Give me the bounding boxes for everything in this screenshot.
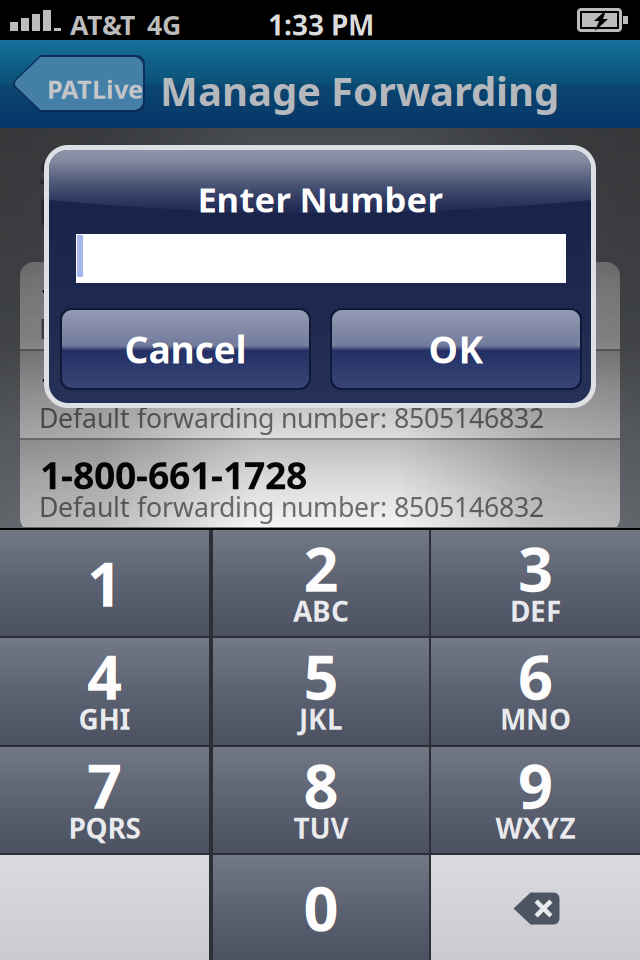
staticText: OK [428, 324, 483, 374]
staticText: 1 [87, 542, 122, 624]
staticText: 8 [303, 744, 338, 826]
button[interactable]: OK [330, 308, 582, 390]
staticText: 6 [518, 635, 553, 717]
button[interactable]: Blank [0, 855, 209, 960]
staticText: 0 [303, 867, 338, 948]
button[interactable]: 1-800-265-0895 [20, 262, 620, 349]
staticText: JKL [299, 700, 343, 738]
staticText: 1:33 PM [268, 6, 374, 43]
staticText: Select the inbound number you'd [39, 150, 592, 194]
staticText: 3 [518, 527, 553, 609]
button[interactable]: 4 [0, 638, 209, 745]
button[interactable]: 6 [431, 638, 640, 745]
staticText: Enter Number [197, 176, 442, 222]
button[interactable]: PATLive [11, 55, 145, 112]
staticText: Default forwarding number: 8505146832 [39, 400, 544, 435]
staticText: 4 [87, 635, 122, 717]
staticText: DEF [510, 592, 561, 630]
staticText: Manage Forwarding [160, 64, 559, 117]
staticText: ABC [293, 592, 349, 630]
button[interactable]: 2 [213, 530, 429, 636]
button[interactable]: 1-800-294-7282 [20, 351, 620, 438]
button[interactable]: Delete [431, 855, 640, 960]
staticText: PQRS [68, 809, 140, 847]
staticText: 9 [518, 744, 553, 826]
button[interactable]: 8 [213, 747, 429, 853]
staticText: WXYZ [495, 809, 575, 847]
button[interactable]: Cancel [60, 308, 311, 390]
button[interactable]: 0 [213, 855, 429, 960]
staticText: PATLive [47, 72, 143, 106]
staticText: 1-800-294-7282 [40, 361, 307, 411]
button[interactable]: 9 [431, 747, 640, 853]
staticText: 1-800-265-0895 [40, 272, 307, 322]
staticText: AT&T [70, 7, 135, 42]
staticText: 1-800-661-1728 [40, 450, 307, 500]
staticText: TUV [293, 809, 348, 847]
staticText: 5 [303, 635, 338, 717]
button[interactable]: 5 [213, 638, 429, 745]
staticText: like to manage: [39, 190, 298, 234]
button[interactable]: 1-800-661-1728 [20, 440, 620, 527]
staticText: Cancel [124, 324, 246, 374]
staticText: GHI [78, 700, 130, 738]
staticText: 7 [87, 744, 122, 826]
staticText: MNO [500, 700, 571, 738]
button[interactable]: 1 [0, 530, 209, 636]
staticText: 4G [147, 7, 181, 42]
button[interactable]: 7 [0, 747, 209, 853]
staticText: 2 [303, 527, 338, 609]
button[interactable]: 3 [431, 530, 640, 636]
staticText: Default forwarding number: 8887454527 [39, 311, 544, 346]
staticText: Default forwarding number: 8505146832 [39, 489, 544, 524]
